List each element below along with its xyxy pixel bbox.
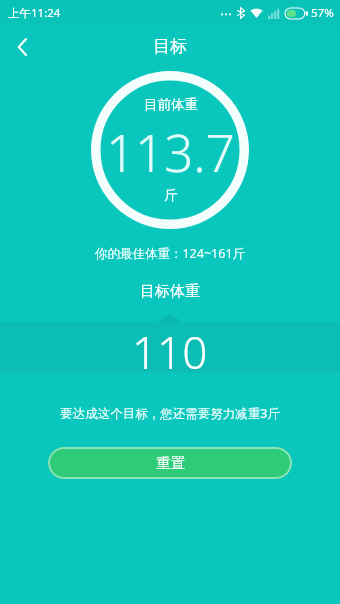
staticText: 重置 [156, 454, 185, 472]
staticText: 上午11:24 [8, 5, 61, 21]
staticText: 110 [132, 322, 208, 373]
button[interactable]: 重置 [48, 447, 292, 479]
staticText: 要达成这个目标，您还需要努力减重3斤 [0, 405, 340, 422]
button[interactable]: Back [0, 25, 44, 68]
staticText: 目前体重 [144, 96, 198, 113]
staticText: 57% [311, 5, 334, 21]
button[interactable]: 110 [0, 322, 340, 373]
staticText: 目标 [153, 36, 187, 57]
staticText: 斤 [164, 187, 178, 204]
staticText: 113.7 [106, 117, 235, 186]
staticText: 目标体重 [0, 282, 340, 301]
staticText: 你的最佳体重：124~161斤 [0, 245, 340, 262]
